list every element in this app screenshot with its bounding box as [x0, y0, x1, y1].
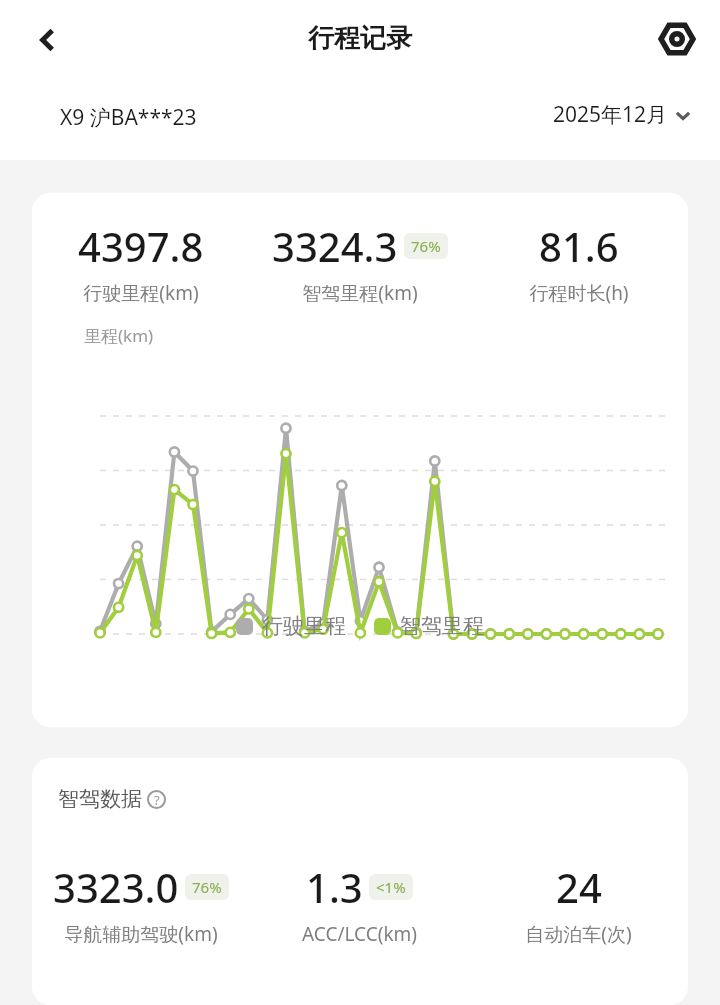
staticText: 2025年12月 [553, 100, 668, 129]
button[interactable]: 81.6 [469, 219, 688, 306]
staticText: 行程时长(h) [529, 280, 629, 306]
button[interactable]: 行驶里程 [236, 613, 346, 639]
staticText: 智驾里程(km) [302, 280, 418, 306]
staticText: 行程记录 [308, 22, 412, 55]
staticText: 81.6 [539, 219, 619, 273]
staticText: ? [154, 791, 160, 809]
staticText: 行驶里程 [262, 613, 346, 639]
button[interactable]: 24 [469, 860, 688, 947]
staticText: 3324.3 [272, 219, 398, 273]
staticText: 24 [556, 860, 602, 914]
button[interactable]: 1.3 [250, 860, 469, 947]
staticText: 76% [411, 236, 441, 256]
button[interactable]: 智驾里程 [374, 613, 484, 639]
staticText: 76% [192, 877, 222, 897]
button[interactable]: 4397.8 [32, 219, 250, 306]
staticText: 1.3 [306, 860, 363, 914]
button[interactable]: Back [18, 10, 78, 70]
staticText: 导航辅助驾驶(km) [64, 921, 218, 947]
button[interactable]: 2025年12月 [553, 100, 692, 129]
staticText: 4397.8 [78, 219, 204, 273]
button[interactable]: 3323.0 [32, 860, 250, 947]
staticText: 智驾里程 [400, 613, 484, 639]
staticText: 行驶里程(km) [83, 280, 199, 306]
staticText: 里程(km) [84, 324, 154, 347]
button[interactable]: Settings [648, 10, 706, 68]
button[interactable]: 3324.3 [250, 219, 469, 306]
staticText: 自动泊车(次) [525, 921, 632, 947]
staticText: 3323.0 [53, 860, 179, 914]
staticText: 智驾数据 [58, 786, 142, 812]
staticText: ACC/LCC(km) [302, 921, 417, 947]
staticText: X9 沪BA***23 [60, 103, 197, 132]
button[interactable]: 智驾数据 [58, 786, 166, 812]
staticText: <1% [376, 877, 406, 897]
